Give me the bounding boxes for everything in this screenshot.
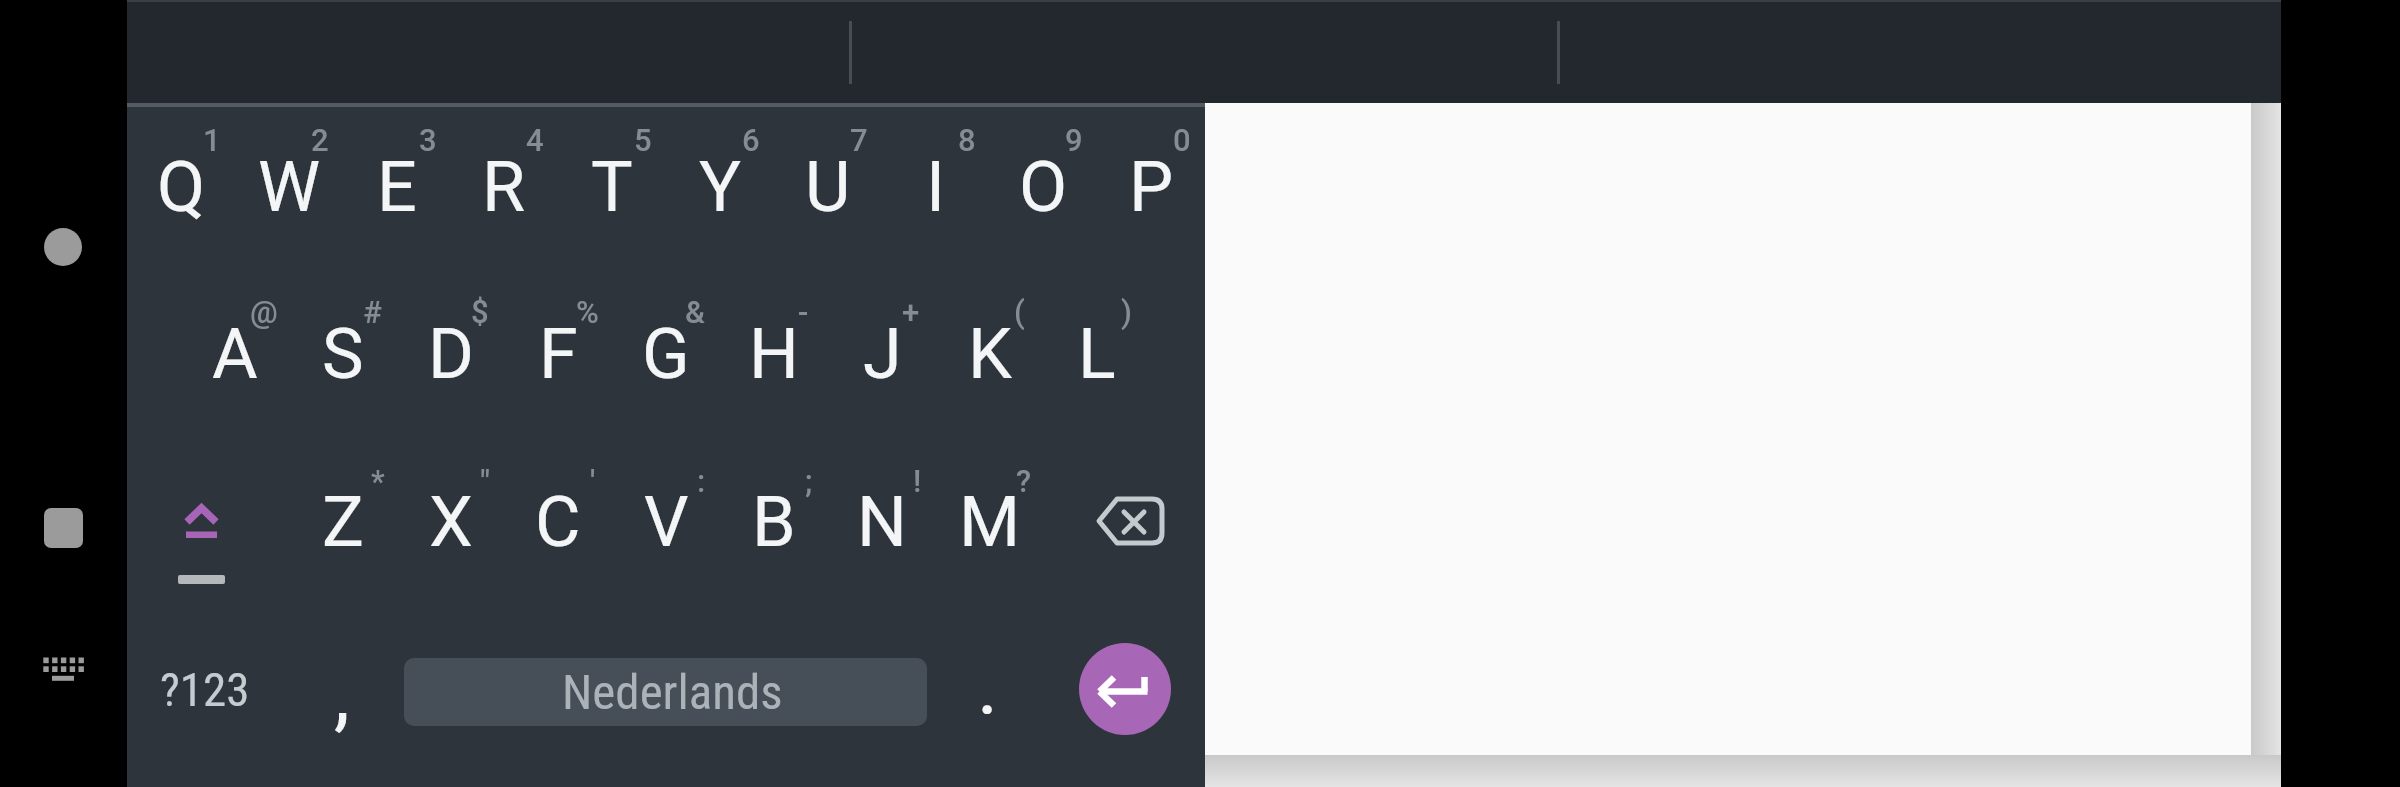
staticText: G: [642, 313, 690, 395]
staticText: X: [429, 481, 473, 563]
staticText: #: [363, 294, 382, 330]
staticText: Nederlands: [562, 664, 783, 721]
staticText: ": [480, 463, 491, 499]
button[interactable]: [127, 606, 289, 787]
staticText: $: [471, 294, 489, 330]
staticText: 1: [203, 122, 221, 158]
button[interactable]: [127, 438, 289, 606]
button[interactable]: S: [289, 270, 397, 438]
button[interactable]: B: [720, 438, 828, 606]
button[interactable]: Y: [666, 104, 774, 270]
staticText: V: [644, 481, 689, 563]
staticText: C: [535, 481, 581, 563]
staticText: ): [1121, 294, 1132, 330]
staticText: F: [539, 313, 578, 395]
button[interactable]: V: [612, 438, 720, 606]
button[interactable]: [1560, 0, 2281, 103]
staticText: U: [805, 146, 851, 228]
button[interactable]: L: [1043, 270, 1151, 438]
staticText: P: [1129, 146, 1174, 228]
staticText: Z: [322, 481, 364, 563]
button[interactable]: [1079, 643, 1171, 735]
staticText: B: [752, 481, 796, 563]
staticText: @: [250, 294, 278, 330]
button[interactable]: A: [181, 270, 289, 438]
staticText: L: [1078, 313, 1116, 395]
button[interactable]: [289, 606, 397, 787]
staticText: :: [697, 463, 706, 499]
staticText: ': [590, 463, 596, 499]
staticText: T: [591, 146, 633, 228]
staticText: S: [322, 313, 364, 395]
button[interactable]: J: [828, 270, 936, 438]
button[interactable]: H: [720, 270, 828, 438]
staticText: R: [482, 146, 526, 228]
button[interactable]: M: [936, 438, 1044, 606]
staticText: 9: [1065, 122, 1083, 158]
staticText: K: [968, 313, 1012, 395]
button[interactable]: G: [612, 270, 720, 438]
staticText: Q: [157, 146, 206, 228]
button[interactable]: X: [397, 438, 505, 606]
staticText: ?: [1016, 463, 1032, 499]
staticText: 8: [958, 122, 976, 158]
staticText: &: [685, 294, 705, 330]
staticText: ;: [805, 463, 813, 499]
button[interactable]: [934, 606, 1042, 787]
button[interactable]: [127, 0, 849, 103]
button[interactable]: D: [397, 270, 505, 438]
staticText: 7: [850, 122, 868, 158]
button[interactable]: W: [235, 104, 343, 270]
button[interactable]: [44, 228, 82, 266]
staticText: 5: [634, 122, 652, 158]
button[interactable]: I: [882, 104, 990, 270]
staticText: -: [798, 294, 809, 330]
button[interactable]: P: [1097, 104, 1205, 270]
button[interactable]: Z: [289, 438, 397, 606]
staticText: D: [428, 313, 474, 395]
staticText: !: [913, 463, 922, 499]
button[interactable]: [852, 0, 1557, 103]
staticText: O: [1019, 146, 1068, 228]
button[interactable]: [1043, 438, 1205, 606]
staticText: ?123: [160, 662, 250, 717]
staticText: N: [857, 481, 907, 563]
button[interactable]: [42, 656, 86, 682]
button[interactable]: R: [450, 104, 558, 270]
staticText: 2: [311, 122, 329, 158]
button[interactable]: Q: [127, 104, 235, 270]
staticText: M: [959, 481, 1021, 563]
staticText: A: [212, 313, 258, 395]
staticText: (: [1014, 294, 1025, 330]
button[interactable]: K: [936, 270, 1044, 438]
button[interactable]: F: [504, 270, 612, 438]
staticText: J: [863, 313, 902, 395]
button[interactable]: O: [989, 104, 1097, 270]
staticText: E: [377, 146, 417, 228]
button[interactable]: Nederlands: [404, 658, 927, 726]
staticText: 6: [742, 122, 760, 158]
staticText: 3: [419, 122, 437, 158]
staticText: 4: [526, 122, 544, 158]
button[interactable]: N: [828, 438, 936, 606]
button[interactable]: C: [504, 438, 612, 606]
button[interactable]: [44, 508, 83, 548]
staticText: +: [902, 294, 920, 330]
staticText: %: [576, 294, 599, 330]
staticText: 0: [1173, 122, 1191, 158]
staticText: Y: [699, 146, 742, 228]
staticText: *: [371, 463, 385, 499]
staticText: W: [258, 146, 321, 228]
staticText: H: [749, 313, 799, 395]
staticText: I: [926, 146, 946, 228]
staticText: .: [977, 640, 999, 734]
button[interactable]: U: [774, 104, 882, 270]
button[interactable]: T: [558, 104, 666, 270]
button[interactable]: E: [343, 104, 451, 270]
staticText: ,: [334, 648, 350, 742]
